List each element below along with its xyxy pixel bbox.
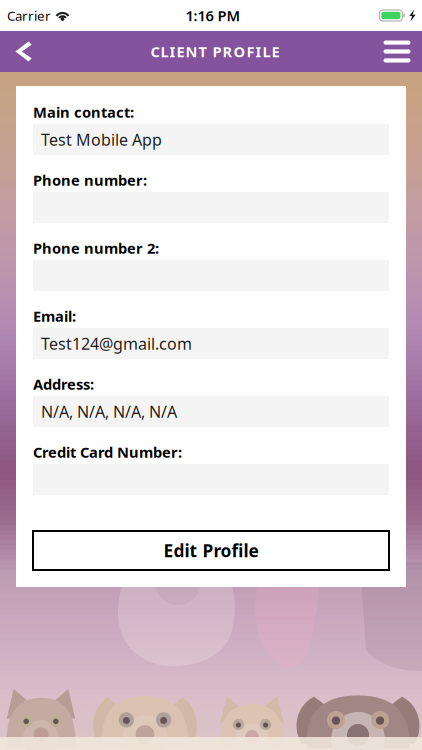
staticText: Edit Profile xyxy=(163,539,258,562)
button[interactable]: Menu xyxy=(375,31,419,72)
staticText: Main contact: xyxy=(33,102,134,122)
button[interactable]: Edit Profile xyxy=(33,531,389,570)
staticText: Email: xyxy=(33,306,76,326)
staticText: N/A, N/A, N/A, N/A xyxy=(41,401,177,422)
staticText: Phone number: xyxy=(33,170,147,190)
staticText: C L I E N T P R O F I L E xyxy=(150,42,279,61)
staticText: Credit Card Number: xyxy=(33,442,182,462)
button[interactable]: Back xyxy=(0,31,47,72)
staticText: Phone number 2: xyxy=(33,238,159,258)
staticText: Carrier xyxy=(7,7,51,24)
staticText: Test Mobile App xyxy=(41,129,162,150)
staticText: Test124@gmail.com xyxy=(41,333,192,354)
staticText: Address: xyxy=(33,374,94,394)
staticText: 1:16 PM xyxy=(185,6,240,25)
